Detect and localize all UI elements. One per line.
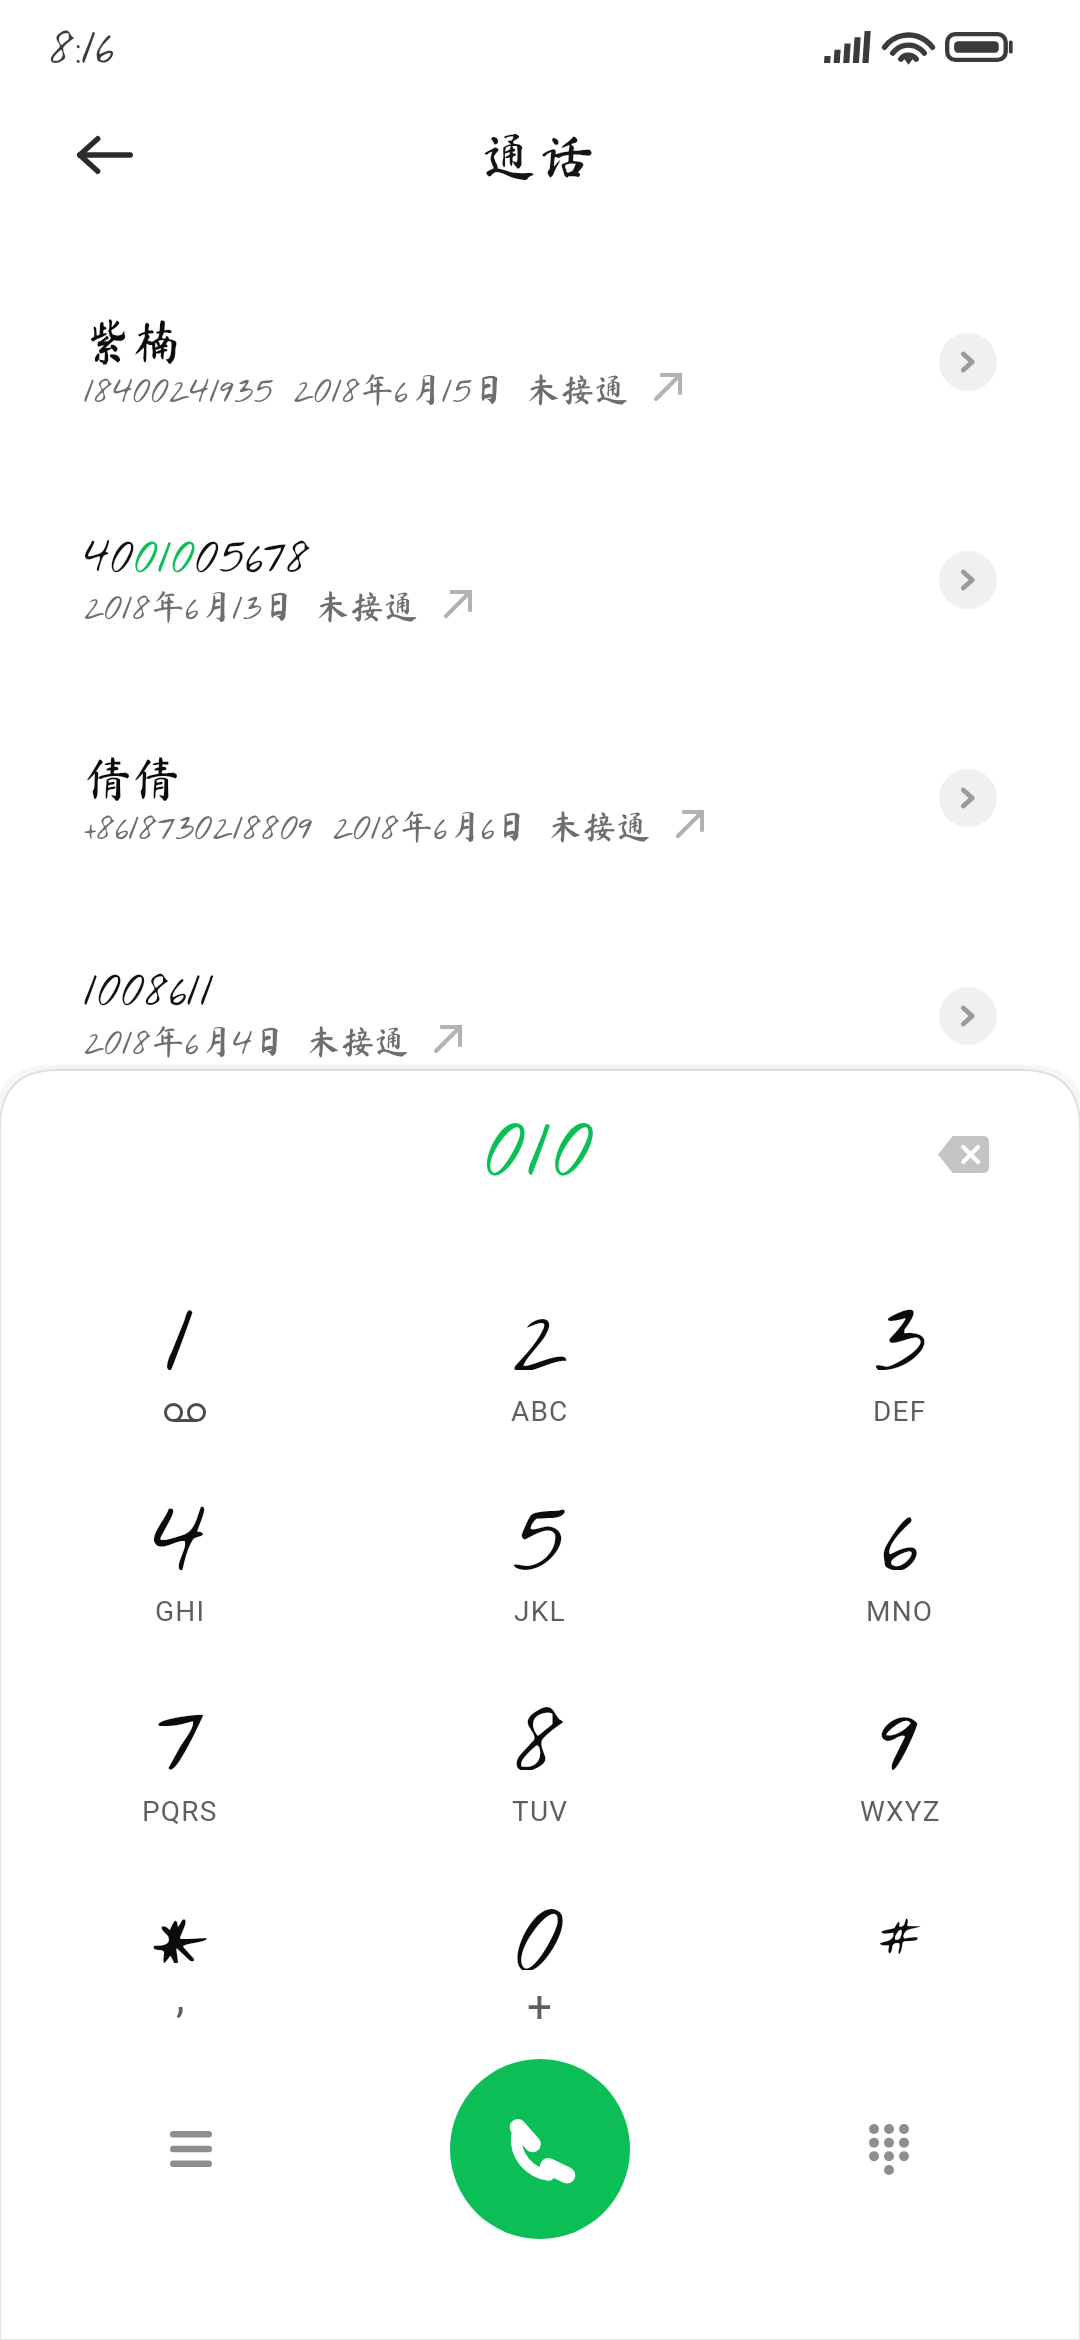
button[interactable]: 0 [370,1868,710,2068]
button[interactable]: 4001005678 [84,525,904,581]
staticText: + [527,1981,554,2033]
button[interactable]: Keypad [834,2094,944,2204]
staticText: +8618730218809 2018年6月6日 未接通 [84,803,651,845]
button[interactable]: 倩倩 [84,750,904,806]
button[interactable]: Back [50,100,160,210]
button[interactable]: 4 [10,1468,350,1668]
staticText: 5 [512,1474,568,1570]
staticText: 8:16 [50,14,115,83]
button[interactable]: * [10,1868,350,2068]
button[interactable]: 7 [10,1668,350,1868]
staticText: 2018年6月4日 未接通 [84,1018,409,1060]
button[interactable]: Call details [939,551,997,609]
staticText: GHI [155,1595,206,1628]
button[interactable]: 1008611 [84,958,904,1014]
staticText: 通话 [482,128,598,182]
staticText: 9 [880,1674,920,1770]
staticText: 1008611 [84,958,215,1014]
staticText: 7 [156,1674,205,1770]
staticText: , [176,1971,186,2023]
staticText: MNO [866,1595,934,1628]
staticText: DEF [873,1395,927,1428]
button[interactable]: 3 [730,1268,1070,1468]
staticText: 倩倩 [84,754,181,802]
button[interactable]: 紫楠 [84,313,904,369]
button[interactable]: Call details [939,333,997,391]
button[interactable]: 1 [10,1268,350,1468]
button[interactable]: Call log [136,2094,246,2204]
staticText: 1 [166,1274,195,1370]
button[interactable]: 5 [370,1468,710,1668]
staticText: WXYZ [860,1795,941,1828]
staticText: 3 [874,1274,927,1370]
staticText: 6 [882,1474,919,1570]
button[interactable]: 8 [370,1668,710,1868]
button[interactable]: 6 [730,1468,1070,1668]
button[interactable]: Call [450,2059,630,2239]
staticText: * [152,1867,209,1963]
staticText: 0 [515,1874,565,1970]
staticText: # [879,1896,921,1979]
staticText: 4 [152,1474,208,1570]
staticText: TUV [512,1795,569,1828]
staticText: JKL [514,1595,566,1628]
staticText: PQRS [142,1795,218,1828]
staticText: 010 [485,1094,596,1190]
staticText: 2 [512,1274,568,1370]
staticText: 8 [515,1674,566,1770]
staticText: 2018年6月13日 未接通 [84,583,419,625]
staticText: 4001005678 [84,525,311,581]
staticText: 18400241935 2018年6月15日 未接通 [84,366,629,408]
button[interactable]: # [730,1868,1070,2068]
button[interactable]: Call details [939,769,997,827]
button[interactable]: Call details [939,987,997,1045]
button[interactable]: 2 [370,1268,710,1468]
button[interactable]: 9 [730,1668,1070,1868]
button[interactable]: Backspace [908,1106,1018,1202]
staticText: ABC [511,1395,569,1428]
staticText: 紫楠 [84,317,181,365]
